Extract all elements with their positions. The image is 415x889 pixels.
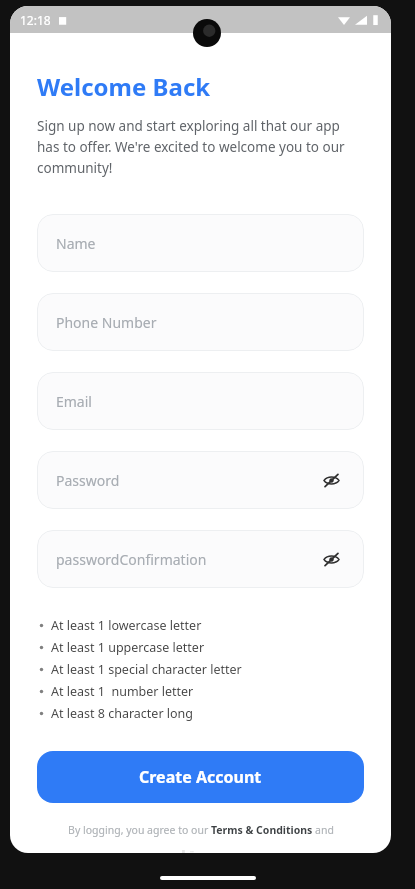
button[interactable]: Create Account [37, 751, 364, 803]
staticText: At least 1 number letter [51, 683, 194, 700]
staticText: Name [56, 234, 96, 253]
staticText: Welcome Back [37, 70, 211, 103]
staticText: Create Account [139, 766, 262, 788]
staticText: Sign up now and start exploring all that… [37, 117, 364, 177]
staticText: passwordConfirmation [56, 550, 207, 569]
button[interactable]: Email [37, 372, 364, 430]
button[interactable]: Show password confirmation [317, 545, 345, 573]
staticText: 12:18 [20, 12, 51, 28]
staticText: At least 1 lowercase letter [51, 617, 202, 634]
button[interactable]: Password [37, 451, 364, 509]
staticText: At least 8 character long [51, 705, 194, 722]
button[interactable]: passwordConfirmation [37, 530, 364, 588]
button[interactable]: Show password [317, 466, 345, 494]
staticText: At least 1 special character letter [51, 661, 242, 678]
button[interactable]: Phone Number [37, 293, 364, 351]
staticText: At least 1 uppercase letter [51, 639, 205, 656]
staticText: Email [56, 392, 92, 411]
staticText: Phone Number [56, 313, 157, 332]
button[interactable]: By logging, you agree to our Terms & Con… [68, 823, 334, 837]
staticText: Password [56, 471, 120, 490]
button[interactable]: Name [37, 214, 364, 272]
staticText: مستقل [173, 847, 228, 853]
